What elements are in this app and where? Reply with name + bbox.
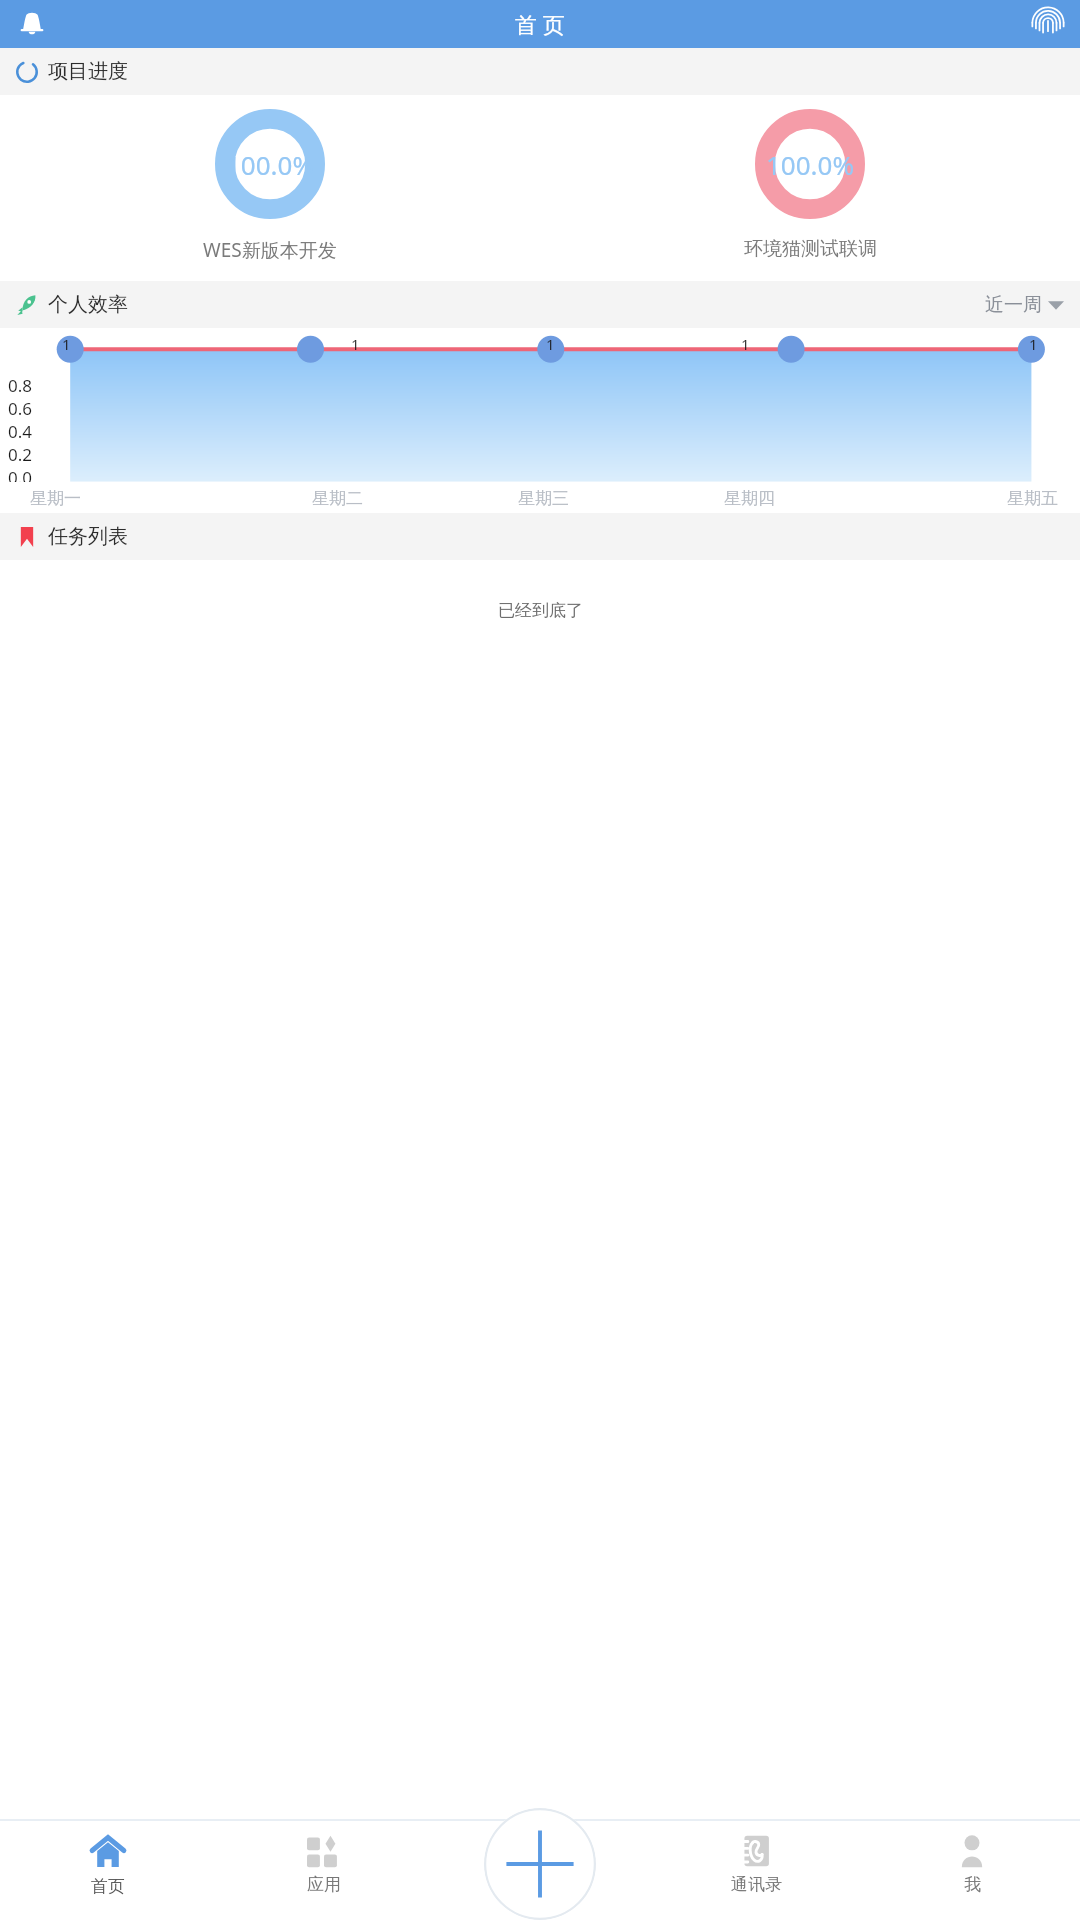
staticText: 星期四 (724, 488, 775, 509)
button[interactable]: 通讯录 (648, 1820, 864, 1920)
staticText: 1 (351, 334, 360, 354)
staticText: 1 (546, 334, 555, 354)
button[interactable]: Notifications (8, 0, 56, 48)
staticText: 0.0 (8, 466, 33, 482)
button[interactable]: 应用 (216, 1820, 432, 1920)
staticText: 近一周 (985, 293, 1042, 317)
staticText: 星期一 (30, 488, 81, 509)
staticText: 已经到底了 (498, 600, 583, 621)
staticText: 1 (1029, 334, 1038, 354)
staticText: 首 页 (515, 9, 565, 39)
staticText: 通讯录 (731, 1874, 782, 1895)
staticText: WES新版本开发 (203, 237, 337, 263)
staticText: 0.4 (8, 420, 33, 443)
button[interactable]: 我 (864, 1820, 1080, 1920)
staticText: 0.2 (8, 443, 33, 466)
button[interactable]: 首页 (0, 1820, 216, 1920)
staticText: 0.6 (8, 397, 33, 420)
button[interactable]: 100.0% (540, 109, 1080, 261)
staticText: 星期三 (518, 488, 569, 509)
staticText: 任务列表 (48, 524, 128, 549)
staticText: 100.0% (766, 147, 855, 182)
staticText: 首页 (91, 1876, 125, 1897)
staticText: 项目进度 (48, 59, 128, 84)
staticText: 1 (62, 334, 71, 354)
staticText: 个人效率 (48, 292, 128, 317)
staticText: 1 (741, 334, 750, 354)
button[interactable]: 100.0% (0, 109, 540, 263)
staticText: 我 (964, 1874, 981, 1895)
staticText: 星期五 (1007, 488, 1058, 509)
staticText: 100.0% (226, 147, 315, 182)
staticText: 0.8 (8, 374, 33, 397)
button[interactable]: 近一周 (985, 293, 1064, 317)
button[interactable]: Add (484, 1808, 596, 1920)
staticText: 星期二 (312, 488, 363, 509)
button[interactable]: Fingerprint login (1024, 0, 1072, 48)
staticText: 应用 (307, 1874, 341, 1895)
staticText: 环境猫测试联调 (744, 237, 877, 261)
